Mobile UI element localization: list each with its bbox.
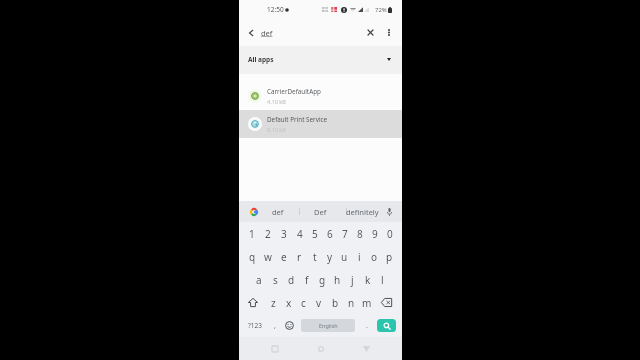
button[interactable]: r xyxy=(292,245,307,268)
button[interactable]: Def xyxy=(306,201,334,222)
button[interactable]: v xyxy=(311,291,327,314)
staticText: d xyxy=(288,273,295,287)
button[interactable]: Home xyxy=(311,339,331,359)
button[interactable]: CarrierDefaultApp xyxy=(239,82,402,110)
staticText: r xyxy=(297,250,302,264)
staticText: w xyxy=(264,250,272,264)
button[interactable]: Default Print Service xyxy=(239,110,402,138)
staticText: ?123 xyxy=(248,321,262,330)
staticText: u xyxy=(341,250,348,264)
button[interactable]: g xyxy=(315,268,330,291)
staticText: English xyxy=(319,322,338,329)
button[interactable]: Google xyxy=(247,205,261,219)
button[interactable]: Recents xyxy=(265,339,285,359)
button[interactable]: . xyxy=(361,314,372,337)
button[interactable]: e xyxy=(276,245,292,268)
button[interactable]: x xyxy=(281,291,296,314)
button[interactable]: w xyxy=(260,245,276,268)
staticText: n xyxy=(348,296,355,310)
button[interactable]: 4 xyxy=(292,222,307,245)
button[interactable]: h xyxy=(330,268,345,291)
staticText: x xyxy=(286,296,292,310)
staticText: def xyxy=(272,207,284,217)
staticText: 6 xyxy=(327,227,333,241)
staticText: a xyxy=(256,273,262,287)
button[interactable]: ?123 xyxy=(245,314,265,337)
staticText: 3 xyxy=(281,227,287,241)
button[interactable]: All apps xyxy=(239,46,402,74)
staticText: CarrierDefaultApp xyxy=(267,87,321,96)
button[interactable]: Clear query xyxy=(362,24,379,41)
staticText: 4 xyxy=(297,227,303,241)
button[interactable]: o xyxy=(367,245,382,268)
staticText: j xyxy=(351,273,354,287)
button[interactable]: i xyxy=(352,245,367,268)
staticText: 1 xyxy=(249,227,255,241)
staticText: 8.10 kB xyxy=(267,126,286,133)
staticText: 9 xyxy=(372,227,378,241)
button[interactable]: u xyxy=(337,245,352,268)
button[interactable]: Backspace xyxy=(375,291,402,314)
staticText: 72% xyxy=(375,6,387,14)
button[interactable]: m xyxy=(359,291,375,314)
staticText: v xyxy=(316,296,322,310)
staticText: t xyxy=(313,250,317,264)
staticText: y xyxy=(327,250,333,264)
button[interactable]: n xyxy=(343,291,359,314)
staticText: 0 xyxy=(387,227,393,241)
button[interactable]: Navigate up xyxy=(242,24,259,41)
button[interactable]: 3 xyxy=(276,222,292,245)
staticText: k xyxy=(365,273,371,287)
staticText: definitely xyxy=(346,207,379,217)
staticText: f xyxy=(305,273,309,287)
button[interactable]: Voice input xyxy=(382,205,396,219)
staticText: . xyxy=(366,321,368,331)
staticText: Default Print Service xyxy=(267,115,328,124)
button[interactable]: def xyxy=(264,201,292,222)
button[interactable]: f xyxy=(299,268,315,291)
button[interactable]: Emoji xyxy=(283,314,296,337)
button[interactable]: English xyxy=(301,319,355,332)
staticText: l xyxy=(381,273,384,287)
staticText: o xyxy=(371,250,378,264)
button[interactable]: 0 xyxy=(382,222,397,245)
button[interactable]: c xyxy=(296,291,311,314)
button[interactable]: Shift xyxy=(239,291,266,314)
staticText: z xyxy=(271,296,276,310)
button[interactable]: s xyxy=(267,268,283,291)
button[interactable]: t xyxy=(307,245,322,268)
button[interactable]: 1 xyxy=(244,222,260,245)
button[interactable]: , xyxy=(269,314,280,337)
button[interactable]: d xyxy=(283,268,299,291)
button[interactable]: b xyxy=(327,291,343,314)
button[interactable]: definitely xyxy=(345,201,379,222)
button[interactable]: z xyxy=(266,291,281,314)
staticText: 7 xyxy=(342,227,348,241)
staticText: 4.10 kB xyxy=(267,98,286,105)
staticText: q xyxy=(249,250,256,264)
button[interactable]: a xyxy=(251,268,267,291)
button[interactable]: More options xyxy=(380,24,397,41)
button[interactable]: 8 xyxy=(352,222,367,245)
button[interactable]: p xyxy=(382,245,397,268)
staticText: 8 xyxy=(357,227,363,241)
button[interactable]: k xyxy=(360,268,375,291)
button[interactable]: 6 xyxy=(322,222,337,245)
button[interactable]: y xyxy=(322,245,337,268)
staticText: 5 xyxy=(312,227,318,241)
staticText: m xyxy=(362,296,372,310)
button[interactable]: j xyxy=(345,268,360,291)
staticText: 12:50 xyxy=(267,5,284,14)
button[interactable]: 9 xyxy=(367,222,382,245)
button[interactable]: 7 xyxy=(337,222,352,245)
button[interactable]: 5 xyxy=(307,222,322,245)
staticText: p xyxy=(386,250,393,264)
button[interactable]: q xyxy=(244,245,260,268)
button[interactable]: l xyxy=(375,268,390,291)
button[interactable]: Search xyxy=(377,319,396,332)
staticText: , xyxy=(274,321,276,331)
staticText: e xyxy=(281,250,287,264)
button[interactable]: Back xyxy=(356,339,376,359)
button[interactable]: 2 xyxy=(260,222,276,245)
staticText: 2 xyxy=(265,227,271,241)
